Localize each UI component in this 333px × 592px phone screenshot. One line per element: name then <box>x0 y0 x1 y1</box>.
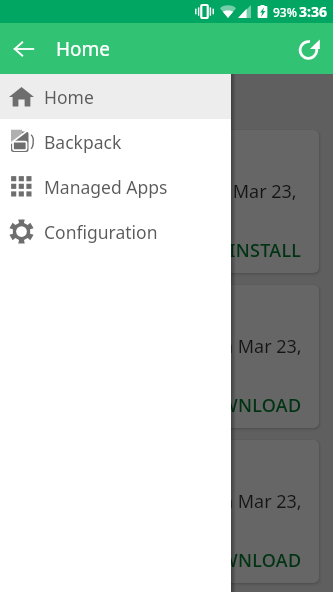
button[interactable]: Configuration <box>0 209 231 254</box>
button[interactable]: My App <box>14 130 319 273</box>
button[interactable]: Managed Apps <box>0 164 231 209</box>
staticText: DOWNLOAD <box>193 548 302 573</box>
staticText: My App <box>68 148 130 171</box>
staticText: Home <box>56 36 111 62</box>
staticText: DOWNLOAD <box>193 393 302 418</box>
button[interactable]: Back <box>0 25 48 73</box>
button[interactable]: Refresh <box>285 25 333 73</box>
staticText: Configuration <box>44 220 158 244</box>
staticText: Managed Apps <box>44 175 168 199</box>
button[interactable]: My App <box>14 440 319 583</box>
staticText: INSTALL <box>229 238 302 263</box>
button[interactable]: My App <box>14 285 319 428</box>
staticText: Home <box>44 85 94 109</box>
staticText: Published on Mar 23, <box>123 489 302 514</box>
staticText: Published on Mar 23, <box>118 179 297 204</box>
button[interactable]: INSTALL <box>221 230 310 271</box>
staticText: Published on Mar 23, <box>123 334 302 359</box>
button[interactable]: Backpack <box>0 119 231 164</box>
staticText: 3:36 <box>299 2 327 21</box>
staticText: 93% <box>273 4 297 20</box>
staticText: Backpack <box>44 130 122 154</box>
button[interactable]: DOWNLOAD <box>185 385 310 426</box>
button[interactable]: DOWNLOAD <box>185 540 310 581</box>
button[interactable]: Home <box>0 74 231 119</box>
